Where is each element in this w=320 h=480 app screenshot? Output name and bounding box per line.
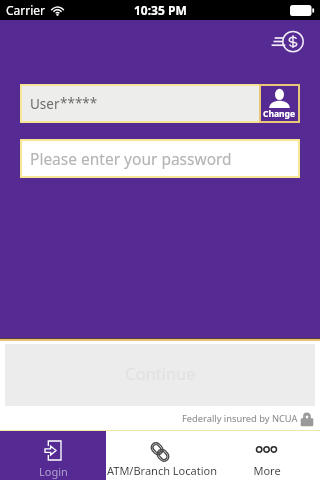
button[interactable]: Please enter your password xyxy=(22,141,298,176)
staticText: Login xyxy=(39,464,68,479)
staticText: Carrier xyxy=(6,2,46,18)
staticText: ATM/Branch Location xyxy=(107,463,217,478)
staticText: Please enter your password xyxy=(30,148,232,169)
button[interactable]: Change xyxy=(261,86,298,121)
staticText: ***** xyxy=(60,94,98,112)
button[interactable]: ATM/Branch Location xyxy=(106,431,213,480)
staticText: Change xyxy=(263,108,296,120)
button[interactable]: Logo xyxy=(266,26,310,60)
button[interactable]: User xyxy=(22,86,298,121)
staticText: More xyxy=(253,463,281,478)
staticText: Continue xyxy=(125,362,196,384)
staticText: User xyxy=(30,95,60,113)
button[interactable]: More xyxy=(213,431,320,480)
staticText: Federally insured by NCUA xyxy=(182,412,298,425)
staticText: 10:35 PM xyxy=(134,2,187,18)
button[interactable]: Login xyxy=(0,431,106,480)
